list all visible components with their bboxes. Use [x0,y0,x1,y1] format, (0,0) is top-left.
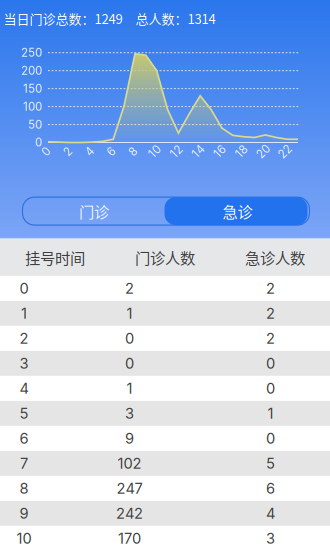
staticText: 1 [21,304,27,322]
staticText: 急诊人数 [245,246,305,268]
button[interactable]: 急诊 [165,197,309,225]
staticText: 4 [86,145,93,158]
staticText: 8 [129,145,136,158]
staticText: 3 [125,404,134,422]
staticText: 急诊 [222,200,252,222]
staticText: 1 [267,404,273,422]
staticText: 242 [116,504,143,522]
staticText: 2 [125,279,134,297]
staticText: 0 [42,145,49,158]
staticText: 10 [149,145,161,158]
staticText: 22 [278,145,292,158]
staticText: 0 [35,136,42,149]
staticText: 0 [125,329,134,347]
button[interactable]: 2 [0,326,330,351]
staticText: 3 [19,354,28,372]
staticText: 4 [266,504,275,522]
staticText: 170 [118,529,141,547]
button[interactable]: 10 [0,526,330,550]
staticText: 6 [108,145,115,158]
staticText: 7 [20,454,28,472]
staticText: 247 [116,479,142,497]
staticText: 0 [266,379,275,397]
staticText: 250 [21,46,42,59]
staticText: 4 [19,379,28,397]
staticText: 3 [266,529,275,547]
staticText: 100 [23,100,42,113]
staticText: 6 [266,479,275,497]
button[interactable]: 9 [0,501,330,526]
staticText: 2 [64,145,71,158]
staticText: 6 [19,429,28,447]
staticText: 150 [23,82,42,95]
button[interactable]: 4 [0,376,330,401]
staticText: 102 [117,454,141,472]
button[interactable]: 8 [0,476,330,501]
staticText: 9 [125,429,134,447]
staticText: 9 [19,504,28,522]
staticText: 2 [266,279,275,297]
staticText: 5 [266,454,275,472]
staticText: 0 [19,279,28,297]
staticText: 18 [236,145,248,158]
staticText: 当日门诊总数：1249 总人数：1314 [4,9,216,28]
button[interactable]: 3 [0,351,330,376]
staticText: 2 [19,329,28,347]
button[interactable]: 6 [0,426,330,451]
button[interactable]: 1 [0,301,330,326]
button[interactable]: 0 [0,276,330,301]
staticText: 门诊人数 [135,246,195,268]
staticText: 14 [192,145,204,158]
staticText: 10 [16,529,31,547]
staticText: 门诊 [79,200,109,222]
button[interactable]: 门诊 [22,197,165,225]
staticText: 8 [19,479,28,497]
staticText: 1 [126,379,132,397]
staticText: 200 [21,64,42,77]
staticText: 50 [28,118,42,131]
staticText: 0 [266,429,275,447]
button[interactable]: 7 [0,451,330,476]
staticText: 0 [266,354,275,372]
staticText: 20 [256,145,270,158]
staticText: 5 [19,404,28,422]
staticText: 12 [170,145,182,158]
staticText: 0 [125,354,134,372]
staticText: 挂号时间 [25,246,85,268]
button[interactable]: 5 [0,401,330,426]
staticText: 16 [214,145,226,158]
staticText: 2 [266,329,275,347]
staticText: 2 [266,304,275,322]
staticText: 1 [126,304,132,322]
